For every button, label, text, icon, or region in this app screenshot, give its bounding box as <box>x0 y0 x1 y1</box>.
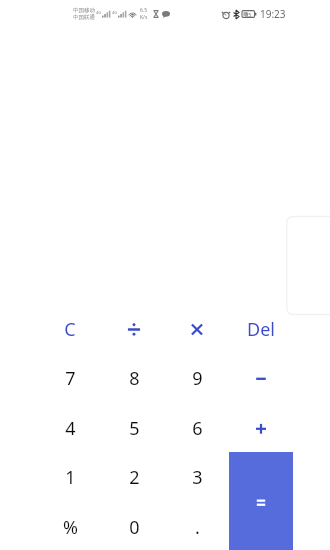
staticText: 2 <box>129 465 140 490</box>
staticText: 4G <box>96 10 102 15</box>
staticText: 中国联通 <box>73 14 95 21</box>
staticText: K/s <box>140 14 148 21</box>
button[interactable]: C <box>38 304 102 354</box>
staticText: % <box>63 515 78 540</box>
staticText: 6 <box>192 416 203 441</box>
staticText: 9 <box>192 366 203 391</box>
button[interactable]: 3 <box>165 452 229 502</box>
staticText: 0 <box>129 515 140 540</box>
button[interactable]: 8 <box>102 353 166 403</box>
staticText: 6.5 <box>140 7 148 14</box>
staticText: 4G <box>112 10 118 15</box>
button[interactable]: 4 <box>38 403 102 453</box>
button[interactable]: Divide <box>102 304 166 354</box>
button[interactable]: 6 <box>165 403 229 453</box>
button[interactable]: % <box>38 502 102 550</box>
staticText: 8 <box>129 366 140 391</box>
button[interactable]: Equals <box>229 452 293 550</box>
button[interactable]: 7 <box>38 353 102 403</box>
staticText: 4 <box>65 416 76 441</box>
button[interactable]: 2 <box>102 452 166 502</box>
staticText: 1 <box>65 465 76 490</box>
button[interactable]: Multiply <box>165 304 229 354</box>
button[interactable]: Del <box>229 304 293 354</box>
staticText: 19:23 <box>260 7 286 21</box>
staticText: C <box>64 317 76 342</box>
button[interactable]: 0 <box>102 502 166 550</box>
button[interactable]: 5 <box>102 403 166 453</box>
staticText: 5 <box>129 416 140 441</box>
button[interactable]: 1 <box>38 452 102 502</box>
staticText: 7 <box>65 366 76 391</box>
button[interactable]: Plus <box>229 403 293 453</box>
staticText: 35 <box>245 11 252 18</box>
staticText: 中国移动 <box>73 7 95 14</box>
staticText: 3 <box>192 465 203 490</box>
staticText: Del <box>247 317 275 342</box>
button[interactable]: 9 <box>165 353 229 403</box>
button[interactable]: . <box>165 502 229 550</box>
staticText: . <box>195 515 200 540</box>
button[interactable]: Minus <box>229 353 293 403</box>
